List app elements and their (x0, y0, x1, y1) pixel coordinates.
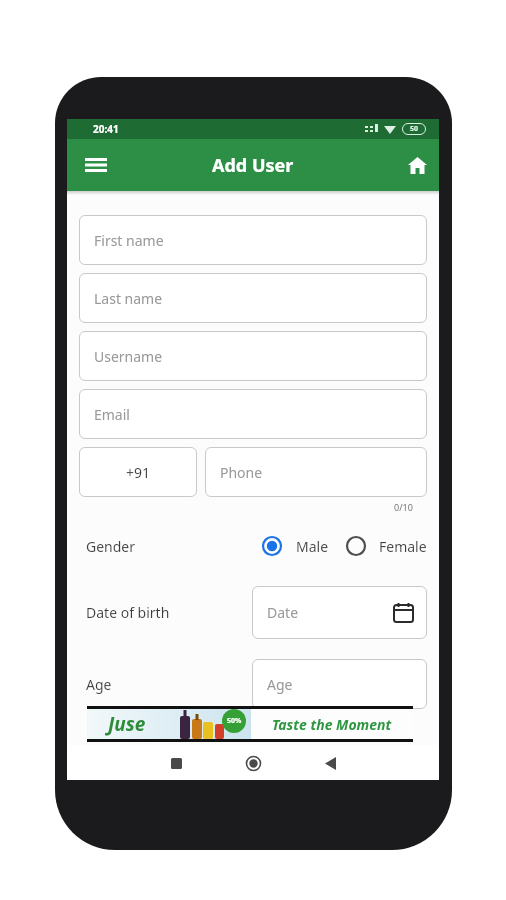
button[interactable]: Last name (79, 273, 427, 323)
staticText: 0/10 (394, 501, 413, 513)
staticText: Taste the Moment (272, 715, 392, 734)
staticText: Add User (212, 153, 294, 178)
button[interactable]: Juse (87, 706, 413, 742)
staticText: 50% (227, 716, 242, 726)
button[interactable] (79, 148, 113, 182)
staticText: Age (86, 675, 112, 694)
button[interactable]: Male (262, 536, 329, 556)
button[interactable]: Username (79, 331, 427, 381)
staticText: 20:41 (93, 122, 119, 136)
staticText: Male (296, 537, 329, 556)
staticText: +91 (126, 463, 151, 482)
staticText: Phone (220, 463, 263, 482)
button[interactable]: +91 (79, 447, 197, 497)
button[interactable]: Phone (205, 447, 427, 497)
staticText: 50 (410, 124, 419, 134)
button[interactable]: Date (252, 586, 427, 639)
button[interactable] (318, 751, 342, 775)
button[interactable] (241, 751, 265, 775)
staticText: First name (94, 231, 164, 250)
button[interactable] (164, 751, 188, 775)
button[interactable]: Female (346, 536, 427, 556)
staticText: Age (267, 675, 293, 694)
staticText: Female (379, 537, 427, 556)
staticText: Juse (108, 711, 146, 737)
button[interactable]: Age (252, 659, 427, 709)
staticText: Last name (94, 289, 163, 308)
staticText: Date of birth (86, 603, 170, 622)
staticText: Username (94, 347, 163, 366)
button[interactable]: Email (79, 389, 427, 439)
staticText: Email (94, 405, 130, 424)
button[interactable] (400, 148, 434, 182)
staticText: Gender (86, 537, 136, 556)
staticText: Date (267, 603, 299, 622)
button[interactable]: First name (79, 215, 427, 265)
